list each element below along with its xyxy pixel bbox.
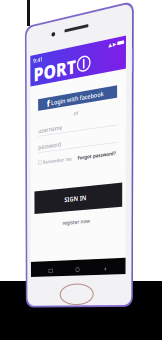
- staticText: 9:41: [0, 0, 42, 25]
- staticText: SIGN IN: [126, 26, 162, 57]
- staticText: PORT: [0, 0, 162, 74]
- staticText: Remember me: [18, 0, 140, 23]
- staticText: Forgot password?: [4, 0, 155, 23]
- staticText: f: [36, 0, 49, 41]
- staticText: ‹: [26, 3, 34, 37]
- staticText: ▶: [57, 1, 70, 21]
- staticText: register now: [19, 1, 131, 25]
- staticText: Login with facebook: [54, 5, 162, 35]
- staticText: ▲: [40, 1, 53, 21]
- staticText: or: [26, 0, 48, 27]
- staticText: password: [0, 0, 96, 26]
- staticText: □: [20, 9, 39, 31]
- staticText: ○: [21, 9, 38, 31]
- staticText: username: [0, 0, 101, 26]
